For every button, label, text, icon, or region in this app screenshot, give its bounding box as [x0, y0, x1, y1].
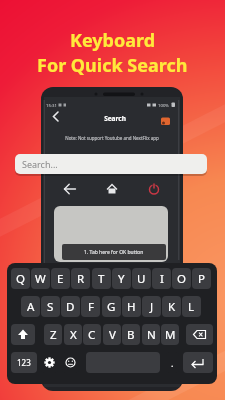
button[interactable] — [159, 115, 172, 127]
button[interactable]: U — [132, 268, 151, 289]
button[interactable] — [41, 352, 58, 373]
staticText: 100% — [158, 102, 169, 108]
staticText: Note: Not support Youtube and NextFlix a… — [65, 135, 159, 141]
staticText: M — [165, 327, 176, 343]
button[interactable] — [183, 352, 213, 373]
button[interactable]: P — [192, 268, 211, 289]
staticText: Search... — [22, 158, 58, 170]
staticText: F — [88, 299, 94, 315]
button[interactable]: G — [102, 296, 121, 317]
button[interactable]: 123 — [11, 352, 37, 373]
button[interactable] — [62, 352, 79, 373]
button[interactable]: H — [122, 296, 141, 317]
staticText: W — [35, 271, 46, 287]
staticText: C — [88, 327, 96, 343]
button[interactable]: . — [166, 352, 179, 373]
button[interactable]: K — [162, 296, 181, 317]
button[interactable]: T — [92, 268, 111, 289]
staticText: D — [66, 299, 75, 315]
button[interactable]: F — [81, 296, 100, 317]
button[interactable]: S — [41, 296, 60, 317]
button[interactable] — [102, 180, 122, 198]
staticText: A — [27, 299, 35, 315]
staticText: Y — [118, 271, 125, 287]
staticText: J — [150, 299, 154, 315]
staticText: 1. Tab here for OK button — [84, 249, 144, 256]
button[interactable]: L — [182, 296, 201, 317]
button[interactable]: W — [31, 268, 50, 289]
button[interactable] — [60, 180, 80, 198]
button[interactable] — [186, 324, 213, 345]
staticText: E — [57, 271, 64, 287]
staticText: O — [177, 271, 186, 287]
button[interactable]: A — [21, 296, 40, 317]
button[interactable]: X — [64, 324, 82, 345]
staticText: B — [127, 327, 135, 343]
button[interactable] — [144, 180, 164, 198]
staticText: N — [147, 327, 156, 343]
button[interactable] — [54, 206, 168, 262]
staticText: For Quick Search — [37, 53, 188, 78]
button[interactable]: I — [152, 268, 171, 289]
staticText: 123 — [17, 357, 31, 368]
button[interactable]: J — [142, 296, 161, 317]
staticText: I — [160, 271, 164, 287]
staticText: X — [70, 327, 77, 343]
button[interactable]: N — [142, 324, 160, 345]
button[interactable] — [50, 109, 64, 123]
button[interactable]: M — [161, 324, 179, 345]
staticText: Z — [50, 327, 57, 343]
button[interactable]: Search... — [15, 154, 207, 174]
button[interactable]: Q — [11, 268, 30, 289]
button[interactable]: B — [122, 324, 140, 345]
staticText: . — [171, 357, 174, 369]
button[interactable]: Z — [44, 324, 62, 345]
staticText: U — [137, 271, 146, 287]
staticText: Q — [16, 271, 25, 287]
staticText: V — [109, 327, 116, 343]
button[interactable]: D — [61, 296, 80, 317]
button[interactable]: C — [83, 324, 101, 345]
button[interactable]: O — [172, 268, 191, 289]
staticText: G — [107, 299, 116, 315]
staticText: L — [188, 299, 195, 315]
button[interactable]: E — [51, 268, 70, 289]
staticText: S — [47, 299, 54, 315]
button[interactable] — [11, 324, 35, 345]
staticText: Search — [104, 114, 126, 123]
staticText: K — [168, 299, 176, 315]
button[interactable]: R — [71, 268, 90, 289]
staticText: H — [127, 299, 136, 315]
staticText: R — [77, 271, 85, 287]
button[interactable]: Y — [112, 268, 131, 289]
button[interactable]: V — [103, 324, 121, 345]
staticText: Keyboard — [70, 28, 156, 53]
staticText: 15:31 — [46, 102, 57, 108]
staticText: T — [98, 271, 105, 287]
staticText: P — [198, 271, 205, 287]
